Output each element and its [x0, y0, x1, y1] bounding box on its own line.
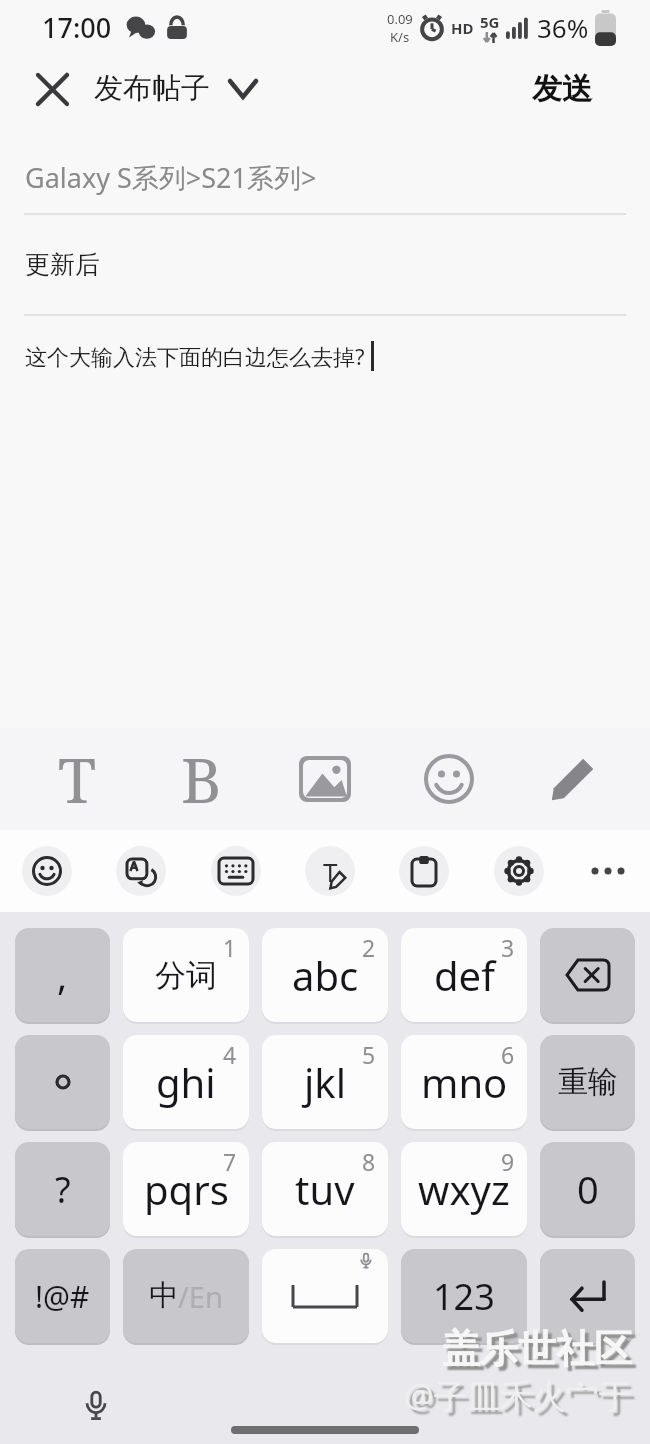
staticText: ghi [156, 1055, 216, 1109]
staticText: def [434, 948, 495, 1002]
staticText: jkl [304, 1055, 346, 1109]
button[interactable] [116, 846, 166, 896]
staticText: 0.09 [387, 10, 413, 28]
button[interactable] [78, 1388, 114, 1424]
staticText: HD [451, 18, 474, 38]
staticText: 9 [501, 1146, 515, 1177]
button[interactable]: B [139, 728, 263, 830]
button[interactable]: 发送 [532, 70, 592, 108]
staticText: @子皿禾火宀于 [404, 1373, 632, 1418]
staticText: !@# [35, 1276, 90, 1317]
staticText: 4 [223, 1039, 237, 1070]
button[interactable]: wxyz [401, 1142, 527, 1236]
button[interactable] [540, 1249, 635, 1343]
button[interactable]: mno [401, 1035, 527, 1129]
button[interactable]: 分词 [123, 928, 249, 1022]
button[interactable]: 更新后 [0, 215, 650, 314]
button[interactable] [588, 851, 628, 891]
button[interactable] [494, 846, 544, 896]
button[interactable] [211, 846, 261, 896]
staticText: 发布帖子 [94, 70, 210, 107]
staticText: 盖乐世社区 [442, 1325, 632, 1373]
button[interactable]: abc [262, 928, 388, 1022]
button[interactable] [22, 846, 72, 896]
button[interactable]: , [15, 928, 110, 1022]
button[interactable]: ghi [123, 1035, 249, 1129]
staticText: 36% [537, 10, 589, 45]
button[interactable]: 发布帖子 [94, 70, 258, 107]
staticText: 8 [362, 1146, 376, 1177]
staticText: B [181, 737, 222, 821]
staticText: 3 [501, 932, 515, 963]
staticText: 7 [223, 1146, 237, 1177]
button[interactable] [15, 1035, 110, 1129]
button[interactable]: T [15, 728, 139, 830]
staticText: 123 [433, 1272, 495, 1321]
button[interactable]: T [305, 846, 355, 896]
staticText: 2 [362, 932, 376, 963]
staticText: ? [55, 1165, 71, 1214]
button[interactable] [262, 1249, 388, 1343]
button[interactable]: ? [15, 1142, 110, 1236]
staticText: mno [421, 1055, 508, 1109]
button[interactable]: def [401, 928, 527, 1022]
staticText: 中 [149, 1277, 178, 1314]
button[interactable]: pqrs [123, 1142, 249, 1236]
staticText: 重输 [558, 1063, 618, 1101]
staticText: 发送 [532, 70, 592, 108]
button[interactable] [399, 846, 449, 896]
staticText: K/s [390, 28, 410, 46]
staticText: 0 [577, 1163, 599, 1215]
button[interactable]: 123 [401, 1249, 527, 1343]
staticText: , [57, 949, 68, 1001]
button[interactable] [263, 728, 387, 830]
staticText: pqrs [144, 1162, 229, 1216]
button[interactable]: tuv [262, 1142, 388, 1236]
button[interactable] [387, 728, 511, 830]
button[interactable] [30, 67, 74, 111]
button[interactable]: Galaxy S系列>S21系列> [0, 122, 650, 213]
staticText: T [323, 854, 338, 889]
staticText: 6 [501, 1039, 515, 1070]
button[interactable]: 0 [540, 1142, 635, 1236]
staticText: abc [292, 948, 359, 1002]
staticText: 5 [362, 1039, 376, 1070]
staticText: Galaxy S系列>S21系列> [25, 159, 317, 196]
staticText: T [58, 737, 97, 821]
button[interactable]: jkl [262, 1035, 388, 1129]
staticText: 5G [480, 12, 500, 32]
staticText: 1 [223, 932, 237, 963]
staticText: 更新后 [25, 249, 100, 280]
staticText: 17:00 [42, 9, 112, 46]
button[interactable]: 中 [123, 1249, 249, 1343]
button[interactable]: !@# [15, 1249, 110, 1343]
staticText: tuv [295, 1162, 355, 1216]
button[interactable] [540, 928, 635, 1022]
button[interactable]: 重输 [540, 1035, 635, 1129]
staticText: /En [178, 1277, 223, 1316]
staticText: wxyz [418, 1162, 510, 1216]
staticText: 这个大输入法下面的白边怎么去掉? [25, 341, 365, 371]
button[interactable] [511, 728, 635, 830]
staticText: 分词 [155, 956, 217, 995]
